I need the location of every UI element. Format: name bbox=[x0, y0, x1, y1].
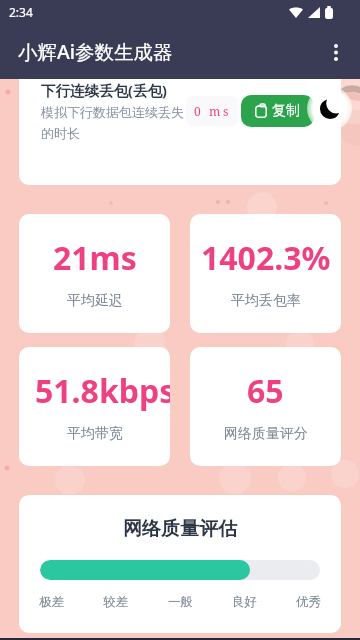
staticText: 良好 bbox=[232, 594, 257, 610]
staticText: 0 ms bbox=[194, 103, 231, 119]
staticText: 2:34 bbox=[9, 4, 33, 20]
button[interactable]: 51.8kbps bbox=[19, 347, 170, 466]
staticText: 优秀 bbox=[296, 594, 321, 610]
staticText: 65 bbox=[247, 369, 284, 413]
button[interactable]: 1402.3% bbox=[190, 214, 341, 333]
staticText: 网络质量评估 bbox=[19, 517, 341, 541]
staticText: 下行连续丢包(丢包) bbox=[41, 80, 167, 100]
staticText: 平均延迟 bbox=[67, 292, 123, 310]
staticText: 较差 bbox=[103, 594, 128, 610]
staticText: 复制 bbox=[272, 102, 300, 120]
staticText: 平均丢包率 bbox=[231, 292, 301, 310]
staticText: 51.8kbps bbox=[35, 369, 170, 413]
staticText: 网络质量评分 bbox=[224, 425, 308, 443]
staticText: 21ms bbox=[53, 236, 137, 280]
staticText: 模拟下行数据包连续丢失 的时长 bbox=[41, 104, 184, 142]
button[interactable]: 网络质量评估 bbox=[19, 495, 341, 633]
button[interactable]: More options bbox=[312, 28, 360, 76]
staticText: 1402.3% bbox=[201, 236, 331, 280]
staticText: 极差 bbox=[39, 594, 64, 610]
button[interactable]: 复制 bbox=[241, 95, 314, 127]
button[interactable]: 65 bbox=[190, 347, 341, 466]
button[interactable]: 21ms bbox=[19, 214, 170, 333]
staticText: 小辉Ai参数生成器 bbox=[18, 38, 173, 65]
button[interactable]: 下行连续丢包(丢包) bbox=[19, 79, 341, 185]
button[interactable]: Toggle dark mode bbox=[307, 86, 352, 131]
staticText: 一般 bbox=[168, 594, 193, 610]
button[interactable]: 0 ms bbox=[186, 96, 238, 126]
staticText: 平均带宽 bbox=[67, 425, 123, 443]
